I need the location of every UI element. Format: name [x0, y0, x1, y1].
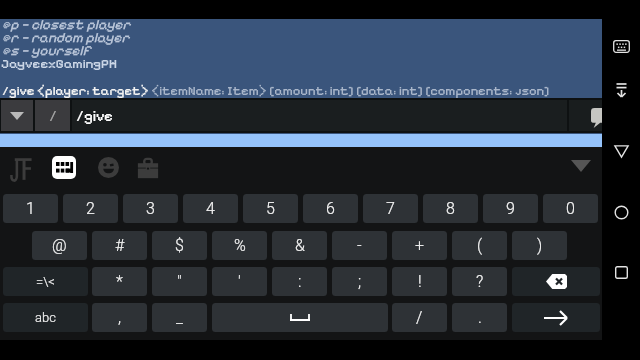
staticText: 4	[206, 199, 215, 218]
button[interactable]: 6	[303, 194, 358, 223]
staticText: _	[176, 308, 183, 327]
button[interactable]: (	[452, 231, 507, 260]
staticText: *	[116, 272, 123, 291]
button[interactable]: Enter	[512, 303, 600, 332]
staticText: "	[177, 272, 182, 291]
staticText: 7	[386, 199, 395, 218]
staticText: $	[175, 236, 184, 255]
staticText: 2	[86, 199, 95, 218]
staticText: )	[537, 236, 543, 255]
staticText: @r — random player	[2, 29, 130, 46]
button[interactable]: =\<	[3, 267, 88, 296]
button[interactable]: .	[452, 303, 507, 332]
button[interactable]: -	[332, 231, 387, 260]
button[interactable]: 1	[3, 194, 58, 223]
button[interactable]: Emoji	[97, 156, 119, 178]
button[interactable]: "	[152, 267, 207, 296]
button[interactable]: 4	[183, 194, 238, 223]
button[interactable]: ?	[452, 267, 507, 296]
staticText: +	[415, 236, 425, 255]
button[interactable]: 9	[483, 194, 538, 223]
button[interactable]: 8	[423, 194, 478, 223]
staticText: %	[234, 236, 246, 255]
staticText: @p — closest player	[2, 16, 131, 33]
staticText: ?	[476, 272, 484, 291]
button[interactable]: Toolbox	[135, 155, 161, 181]
staticText: /give	[76, 107, 113, 125]
button[interactable]: Command history	[1, 100, 33, 131]
staticText: @s — yourself	[2, 42, 91, 59]
button[interactable]: +	[392, 231, 447, 260]
staticText: 1	[26, 199, 35, 218]
staticText: :	[298, 272, 302, 291]
button[interactable]: Keyboard	[52, 156, 76, 179]
button[interactable]: 0	[543, 194, 598, 223]
button[interactable]: )	[512, 231, 567, 260]
button[interactable]: Send message	[569, 100, 602, 131]
staticText: #	[115, 236, 125, 255]
button[interactable]: 7	[363, 194, 418, 223]
button[interactable]: Backspace	[512, 267, 600, 296]
button[interactable]: 5	[243, 194, 298, 223]
button[interactable]: !	[392, 267, 447, 296]
button[interactable]: Expand toolbar	[569, 158, 593, 174]
staticText: .	[478, 308, 482, 327]
button[interactable]: Home	[610, 200, 633, 224]
staticText: 8	[446, 199, 455, 218]
staticText: '	[238, 272, 241, 291]
staticText: 9	[506, 199, 515, 218]
button[interactable]: &	[272, 231, 327, 260]
staticText: 0	[566, 199, 575, 218]
button[interactable]: /give	[72, 100, 567, 131]
staticText: abc	[35, 310, 56, 325]
staticText: (	[477, 236, 483, 255]
button[interactable]: ;	[332, 267, 387, 296]
button[interactable]: ,	[92, 303, 147, 332]
button[interactable]: _	[152, 303, 207, 332]
button[interactable]: abc	[3, 303, 88, 332]
button[interactable]: $	[152, 231, 207, 260]
staticText: 5	[266, 199, 275, 218]
button[interactable]: 3	[123, 194, 178, 223]
button[interactable]: Hide keyboard	[610, 78, 633, 102]
staticText: &	[295, 236, 305, 255]
staticText: @	[52, 236, 67, 255]
button[interactable]: 2	[63, 194, 118, 223]
staticText: /give <player: target> <itemName: Item> …	[2, 83, 550, 99]
button[interactable]: '	[212, 267, 267, 296]
button[interactable]: Change keyboard	[610, 34, 633, 58]
staticText: !	[418, 272, 422, 291]
button[interactable]: Recent apps	[610, 260, 633, 284]
button[interactable]: GIF	[9, 154, 33, 182]
button[interactable]: /	[35, 100, 70, 131]
staticText: ;	[358, 272, 362, 291]
staticText: 6	[326, 199, 335, 218]
button[interactable]: Space	[212, 303, 388, 332]
staticText: ,	[118, 308, 122, 327]
staticText: -	[357, 236, 362, 255]
button[interactable]: %	[212, 231, 267, 260]
staticText: JayveexGamingPH	[1, 56, 117, 72]
staticText: /	[49, 107, 57, 125]
button[interactable]: *	[92, 267, 147, 296]
button[interactable]: Back	[610, 139, 633, 164]
button[interactable]: @	[32, 231, 87, 260]
button[interactable]: #	[92, 231, 147, 260]
staticText: =\<	[36, 274, 55, 289]
button[interactable]: /	[392, 303, 447, 332]
staticText: /	[416, 308, 423, 327]
staticText: 3	[146, 199, 155, 218]
button[interactable]: :	[272, 267, 327, 296]
